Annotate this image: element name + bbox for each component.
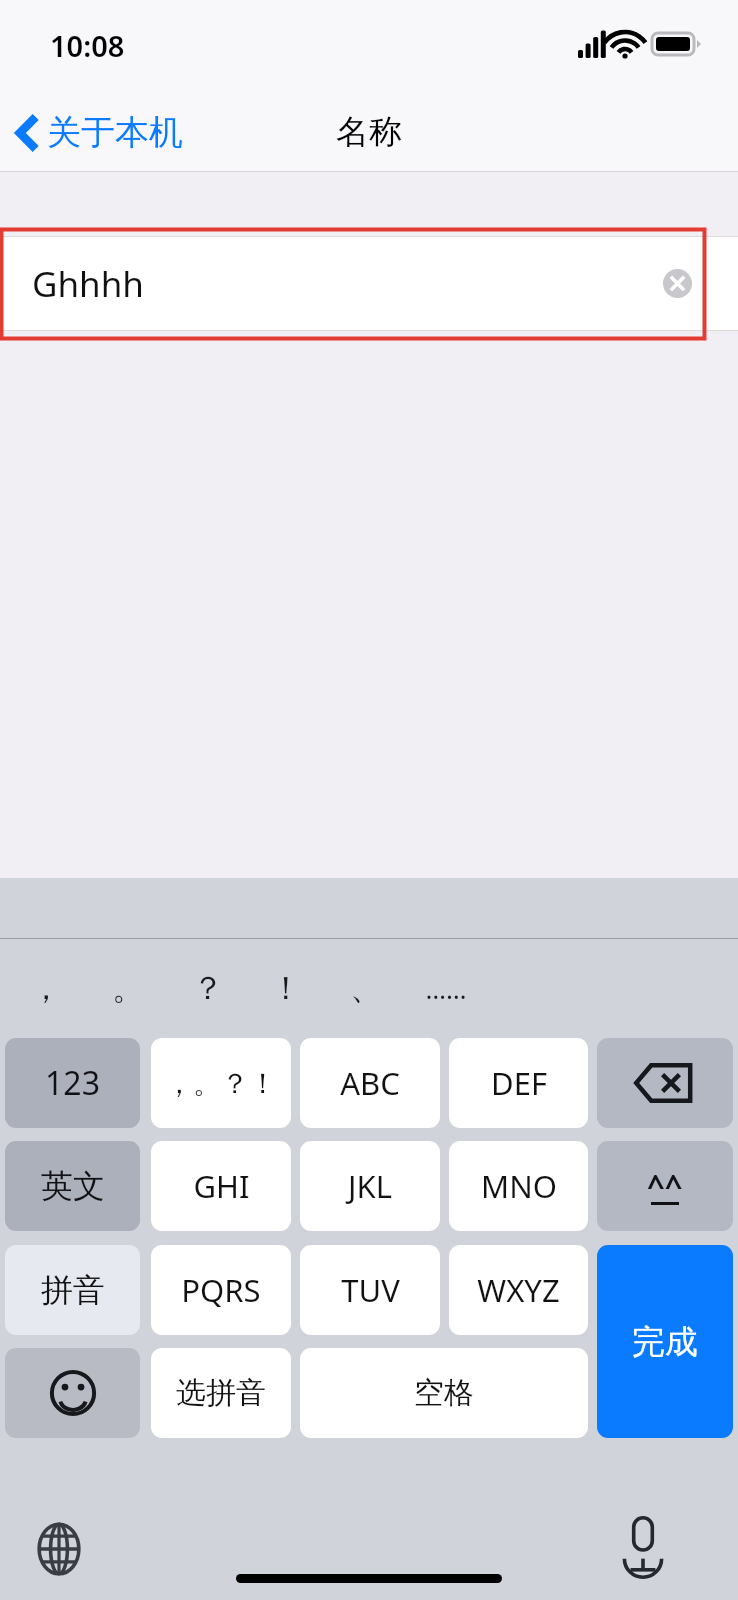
staticText: 名称 (336, 111, 402, 153)
button[interactable]: 英文 (5, 1141, 140, 1231)
button[interactable]: GHI (151, 1141, 291, 1231)
button[interactable]: ，。？！ (151, 1038, 291, 1128)
button[interactable]: ^^ (597, 1141, 733, 1231)
button[interactable]: DEF (449, 1038, 588, 1128)
staticText: MNO (481, 1165, 557, 1207)
button[interactable]: 、 (330, 960, 402, 1016)
button[interactable]: 123 (5, 1038, 140, 1128)
staticText: JKL (348, 1165, 392, 1207)
staticText: 123 (45, 1061, 100, 1105)
staticText: ，。？！ (165, 1066, 277, 1101)
staticText: ABC (340, 1062, 400, 1104)
button[interactable]: 。 (92, 960, 164, 1016)
button[interactable]: Emoji (5, 1348, 140, 1438)
staticText: …… (425, 971, 467, 1006)
button[interactable]: Clear text (663, 269, 692, 298)
staticText: Ghhhh (32, 260, 145, 308)
button[interactable]: 拼音 (5, 1245, 140, 1335)
staticText: 英文 (41, 1166, 105, 1206)
staticText: 拼音 (41, 1270, 105, 1310)
staticText: WXYZ (477, 1269, 560, 1311)
staticText: PQRS (181, 1269, 261, 1311)
staticText: 完成 (632, 1321, 698, 1363)
staticText: ！ (270, 968, 302, 1008)
button[interactable]: 选拼音 (151, 1348, 291, 1438)
button[interactable]: Backspace (597, 1038, 733, 1128)
staticText: DEF (491, 1062, 547, 1104)
staticText: 10:08 (50, 26, 125, 65)
button[interactable]: 关于本机 (0, 105, 195, 160)
button[interactable]: Voice input (612, 1514, 674, 1576)
staticText: GHI (193, 1165, 250, 1207)
button[interactable]: ， (10, 960, 82, 1016)
button[interactable]: Switch keyboard (28, 1518, 90, 1580)
button[interactable]: WXYZ (449, 1245, 588, 1335)
button[interactable]: PQRS (151, 1245, 291, 1335)
staticText: ^^ (647, 1164, 683, 1206)
button[interactable]: 完成 (597, 1245, 733, 1438)
button[interactable]: 空格 (300, 1348, 588, 1438)
staticText: ， (30, 968, 62, 1008)
button[interactable]: ？ (172, 960, 244, 1016)
button[interactable]: ABC (300, 1038, 440, 1128)
button[interactable]: TUV (300, 1245, 440, 1335)
staticText: 空格 (414, 1374, 474, 1412)
staticText: 关于本机 (47, 111, 183, 154)
staticText: TUV (341, 1269, 400, 1311)
button[interactable]: JKL (300, 1141, 440, 1231)
button[interactable]: Ghhhh (0, 236, 738, 331)
button[interactable]: …… (410, 960, 482, 1016)
staticText: 。 (112, 968, 144, 1008)
staticText: ？ (192, 968, 224, 1008)
staticText: 、 (350, 968, 382, 1008)
button[interactable]: ！ (250, 960, 322, 1016)
button[interactable]: MNO (449, 1141, 588, 1231)
staticText: 选拼音 (176, 1374, 266, 1412)
